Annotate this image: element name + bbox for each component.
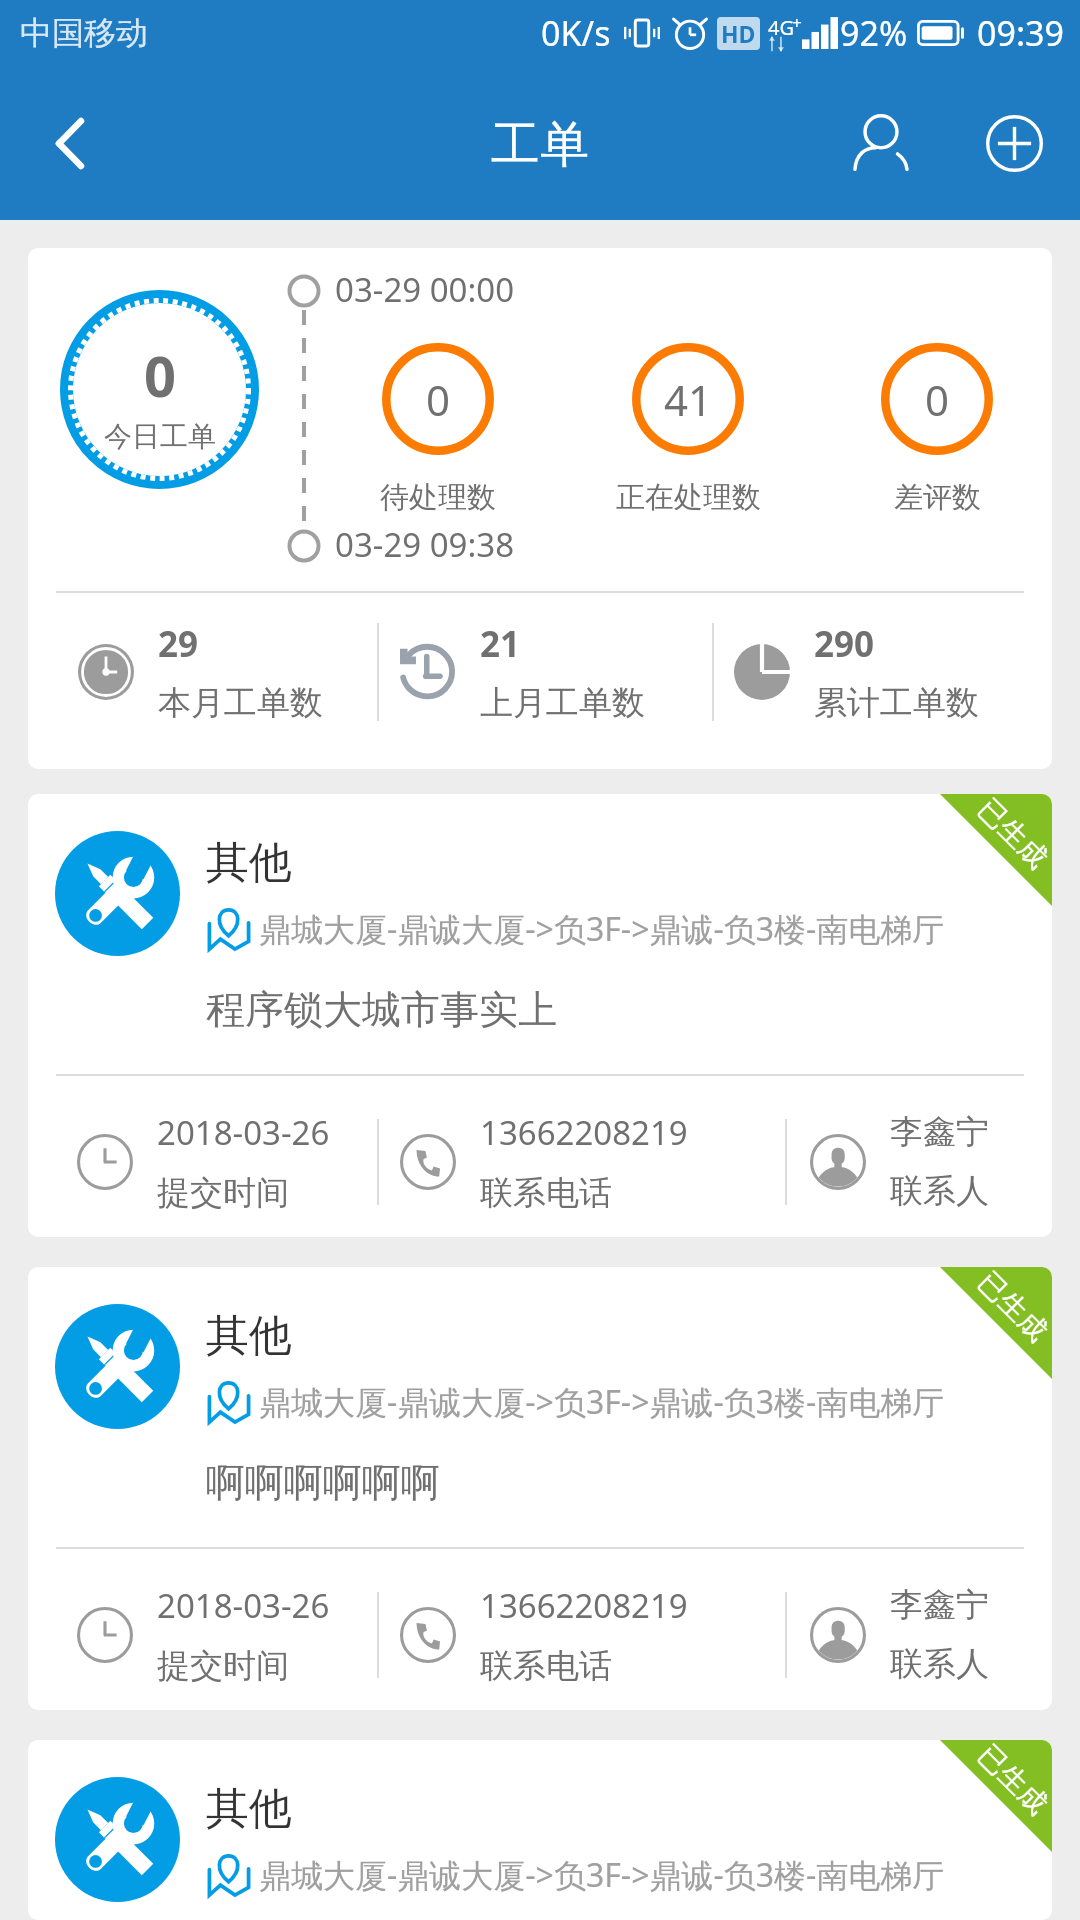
- staticText: HD: [721, 18, 756, 49]
- staticText: 待处理数: [380, 479, 496, 516]
- button[interactable]: 其他: [28, 794, 1052, 1237]
- staticText: 已生成: [971, 1267, 1052, 1349]
- staticText: 其他: [206, 836, 292, 890]
- staticText: 4G: [768, 14, 794, 41]
- staticText: 41: [664, 371, 713, 428]
- button[interactable]: 其他: [28, 1740, 1052, 1920]
- staticText: 92%: [840, 10, 908, 56]
- staticText: 03-29 00:00: [335, 267, 515, 312]
- staticText: 中国移动: [20, 13, 148, 53]
- button[interactable]: 其他: [28, 1267, 1052, 1710]
- staticText: 0: [144, 337, 177, 413]
- staticText: 联系人: [890, 1170, 989, 1212]
- staticText: 鼎城大厦-鼎诚大厦->负3F->鼎诚-负3楼-南电梯厅: [259, 1853, 945, 1897]
- staticText: 李鑫宁: [890, 1111, 989, 1153]
- staticText: 0: [426, 371, 451, 428]
- staticText: 程序锁大城市事实上: [206, 985, 557, 1034]
- staticText: 鼎城大厦-鼎诚大厦->负3F->鼎诚-负3楼-南电梯厅: [259, 1380, 945, 1424]
- staticText: 已生成: [971, 1740, 1052, 1822]
- button[interactable]: Back: [0, 66, 140, 220]
- staticText: 累计工单数: [814, 682, 979, 724]
- staticText: 工单: [491, 114, 589, 176]
- staticText: 290: [814, 620, 875, 668]
- staticText: 联系电话: [480, 1645, 612, 1687]
- staticText: 联系人: [890, 1643, 989, 1685]
- staticText: 李鑫宁: [890, 1584, 989, 1626]
- staticText: 其他: [206, 1309, 292, 1363]
- staticText: 13662208219: [480, 1583, 688, 1628]
- staticText: 已生成: [971, 794, 1052, 876]
- staticText: 差评数: [894, 479, 981, 516]
- staticText: 29: [158, 620, 199, 668]
- staticText: 上月工单数: [480, 682, 645, 724]
- staticText: 0K/s: [541, 10, 611, 56]
- staticText: 提交时间: [157, 1172, 289, 1214]
- staticText: 03-29 09:38: [335, 522, 515, 567]
- staticText: 2018-03-26: [157, 1583, 330, 1628]
- button[interactable]: Add: [948, 66, 1080, 220]
- button[interactable]: Account: [814, 66, 948, 220]
- staticText: 啊啊啊啊啊啊: [206, 1458, 440, 1507]
- staticText: 21: [480, 620, 521, 668]
- staticText: 今日工单: [104, 419, 216, 454]
- staticText: 2018-03-26: [157, 1110, 330, 1155]
- staticText: 鼎城大厦-鼎诚大厦->负3F->鼎诚-负3楼-南电梯厅: [259, 907, 945, 951]
- staticText: 其他: [206, 1782, 292, 1836]
- staticText: 09:39: [977, 10, 1064, 56]
- staticText: 联系电话: [480, 1172, 612, 1214]
- staticText: 正在处理数: [616, 479, 761, 516]
- staticText: +: [792, 11, 802, 34]
- button[interactable]: 0: [28, 248, 1052, 769]
- staticText: 提交时间: [157, 1645, 289, 1687]
- staticText: 0: [925, 371, 950, 428]
- staticText: 本月工单数: [158, 682, 323, 724]
- staticText: 13662208219: [480, 1110, 688, 1155]
